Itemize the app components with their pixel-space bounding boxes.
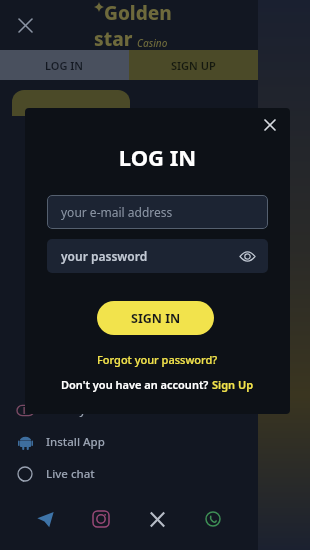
staticText: Casino [137,36,168,50]
button[interactable]: Live chat [0,458,258,490]
button[interactable]: Install App [0,426,258,458]
staticText: Install App [46,434,105,450]
staticText: SIGN UP [171,58,216,73]
button[interactable]: Forgot your password? [25,352,290,367]
staticText: your e-mail address [61,204,173,220]
staticText: LOG IN [45,58,84,73]
button[interactable]: SIGN UP [129,50,258,80]
staticText: Golden [104,0,172,26]
button[interactable]: Close [256,111,284,139]
staticText: Lottery [46,402,86,418]
staticText: Live chat [46,466,95,482]
staticText: Forgot your password? [97,352,218,367]
staticText: LOG IN [25,142,290,172]
button[interactable]: Instagram [88,506,114,532]
button[interactable]: Sign Up [212,377,254,392]
button[interactable]: LOG IN [0,50,129,80]
staticText: Don't you have an account? [61,377,212,392]
button[interactable]: your password [47,239,268,273]
button[interactable]: your e-mail address [47,195,268,229]
button[interactable]: X [144,506,170,532]
button[interactable]: Close menu [8,8,42,42]
button[interactable]: SIGN IN [97,301,214,335]
staticText: star [94,26,133,50]
staticText: Sign Up [212,377,254,392]
button[interactable]: Lottery [0,394,258,426]
staticText: your password [61,248,238,264]
button[interactable]: Show password [238,247,256,265]
staticText: SIGN IN [131,310,181,327]
button[interactable]: Telegram [32,506,58,532]
button[interactable]: WhatsApp [200,506,226,532]
